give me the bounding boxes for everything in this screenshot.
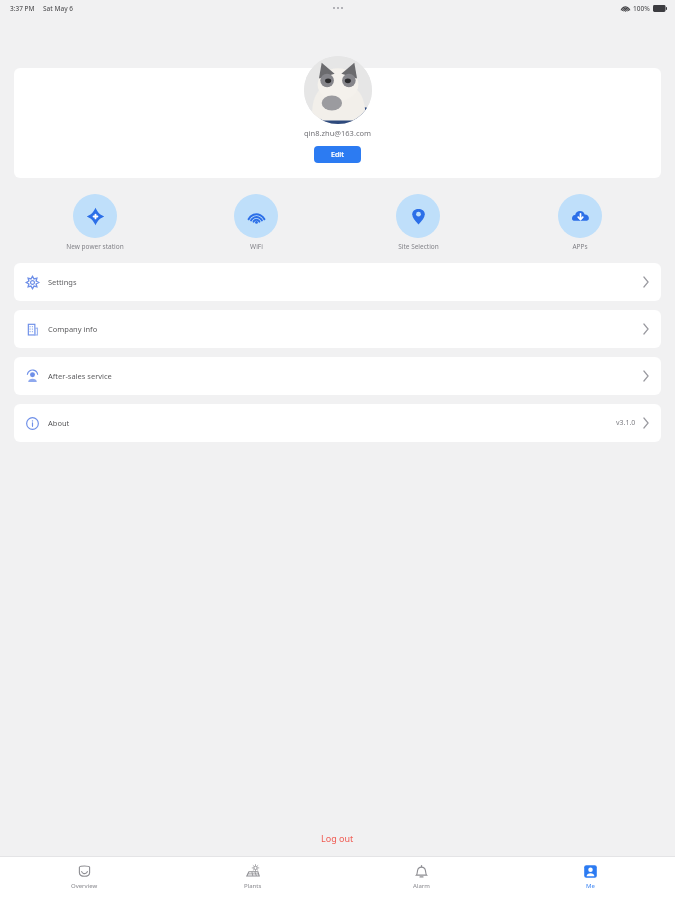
button[interactable]: Me — [506, 857, 675, 900]
button[interactable]: Overview — [0, 857, 168, 900]
button[interactable]: WiFi — [175, 192, 337, 253]
button[interactable]: Settings — [14, 263, 661, 301]
staticText: Plants — [244, 882, 262, 890]
button[interactable]: Profile photo — [304, 56, 372, 124]
staticText: Settings — [48, 277, 77, 287]
button[interactable]: Plants — [168, 857, 337, 900]
button[interactable]: Company info — [14, 310, 661, 348]
staticText: 3:37 PM — [10, 4, 35, 13]
staticText: About — [48, 418, 70, 428]
button[interactable]: About — [14, 404, 661, 442]
staticText: Me — [586, 882, 595, 890]
staticText: qin8.zhu@163.com — [304, 128, 372, 138]
staticText: New power station — [66, 242, 124, 251]
button[interactable]: Alarm — [337, 857, 506, 900]
button[interactable]: Log out — [309, 828, 366, 848]
staticText: Alarm — [413, 882, 430, 890]
staticText: Edit — [331, 150, 344, 160]
staticText: Sat May 6 — [43, 4, 73, 13]
staticText: APPs — [572, 242, 588, 251]
staticText: Overview — [71, 882, 98, 890]
staticText: v3.1.0 — [616, 418, 636, 428]
staticText: After-sales service — [48, 371, 112, 381]
button[interactable]: After-sales service — [14, 357, 661, 395]
staticText: Log out — [321, 832, 354, 844]
button[interactable]: New power station — [14, 192, 175, 253]
staticText: 11 — [332, 109, 343, 121]
staticText: 100% — [633, 4, 650, 13]
button[interactable]: APPs — [499, 192, 661, 253]
button[interactable]: Site Selection — [337, 192, 499, 253]
staticText: Company info — [48, 324, 98, 334]
button[interactable]: Edit — [314, 146, 361, 163]
staticText: Site Selection — [398, 242, 439, 251]
staticText: WiFi — [250, 242, 263, 251]
